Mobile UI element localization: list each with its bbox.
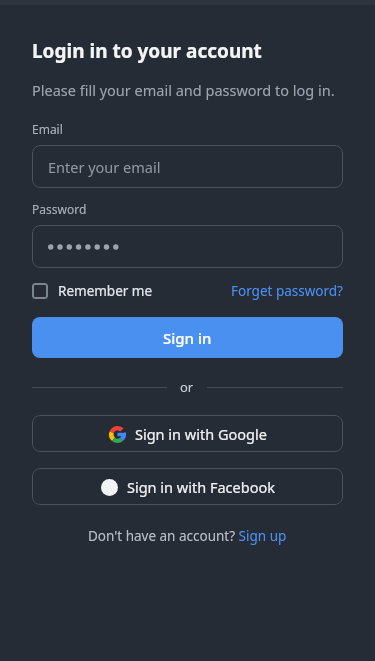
staticText: Password [32,201,87,217]
button[interactable]: Don't have an account? Sign up [32,527,343,545]
staticText: Forget password? [231,282,343,300]
staticText: or [180,378,194,396]
staticText: Enter your email [48,157,161,177]
staticText: Sign in [163,328,212,348]
button[interactable]: Sign in [32,317,343,358]
staticText: Email [32,121,63,137]
button[interactable]: Forget password? [231,282,343,300]
staticText: Login in to your account [32,38,262,64]
button[interactable]: Enter your email [32,145,343,188]
staticText: Don't have an account? Sign up [88,527,287,545]
staticText: Remember me [58,282,153,300]
button[interactable]: Remember me [32,282,153,300]
button[interactable]: Sign in with Google [32,415,343,452]
button[interactable] [32,225,343,268]
staticText: Sign in with Google [135,424,267,444]
staticText: Sign in with Facebook [127,477,275,497]
staticText: Please fill your email and password to l… [32,80,335,100]
button[interactable]: Sign in with Facebook [32,468,343,505]
